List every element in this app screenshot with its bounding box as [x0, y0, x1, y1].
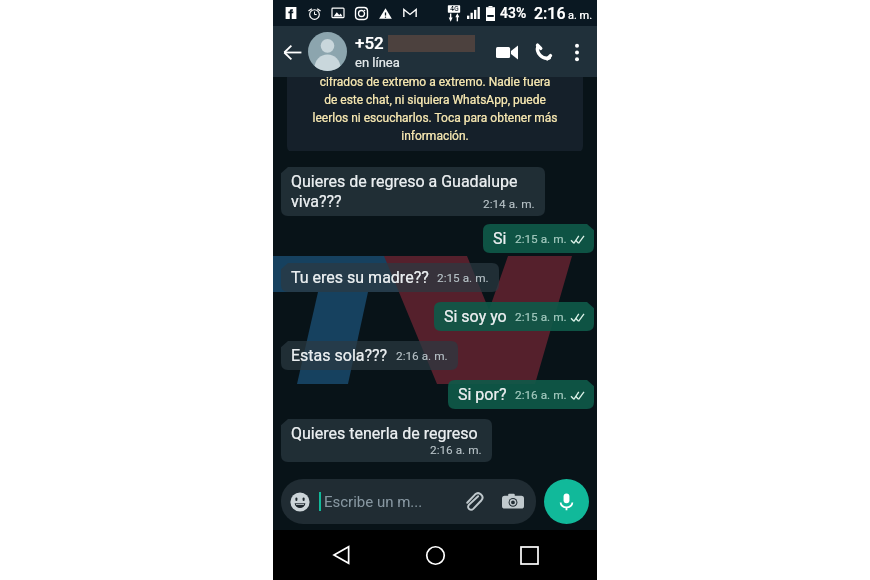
button[interactable]: Home: [415, 535, 455, 575]
staticText: Tu eres su madre??: [291, 268, 429, 287]
button[interactable]: Back: [321, 535, 361, 575]
staticText: 2:15 a. m.: [515, 232, 567, 246]
staticText: Los mensajes y las llamadas están cifrad…: [293, 77, 577, 143]
staticText: Estas sola???: [291, 346, 388, 365]
staticText: 43%: [500, 5, 527, 21]
staticText: 2:16 a. m.: [515, 388, 567, 402]
staticText: Si soy yo: [444, 307, 507, 326]
button[interactable]: Voice message: [544, 479, 589, 524]
button[interactable]: Contact photo: [308, 32, 347, 71]
button[interactable]: More options: [562, 37, 592, 67]
button[interactable]: Si por?: [448, 380, 594, 409]
button[interactable]: Si: [483, 224, 594, 253]
button[interactable]: Quieres de regreso a Guadalupe viva???: [281, 167, 545, 216]
button[interactable]: Back: [277, 37, 307, 67]
staticText: +52: [355, 33, 384, 53]
staticText: Escribe un m...: [324, 493, 423, 511]
staticText: 2:16 a. m.: [396, 349, 448, 363]
staticText: 4G: [450, 5, 459, 13]
staticText: a. m.: [568, 9, 593, 22]
button[interactable]: Tu eres su madre??: [281, 263, 499, 292]
staticText: Si: [493, 229, 507, 248]
staticText: Quieres de regreso a Guadalupe viva???: [291, 172, 518, 211]
staticText: Quieres tenerla de regreso: [291, 424, 478, 443]
button[interactable]: Video call: [490, 35, 524, 69]
button[interactable]: Los mensajes y las llamadas están cifrad…: [287, 77, 583, 151]
staticText: en línea: [355, 55, 400, 70]
staticText: 2:15 a. m.: [515, 310, 567, 324]
button[interactable]: Estas sola???: [281, 341, 458, 370]
staticText: Si por?: [458, 385, 507, 404]
staticText: 2:14 a. m.: [483, 197, 535, 211]
staticText: 2:16 a. m.: [430, 443, 482, 457]
button[interactable]: Attach: [463, 491, 485, 513]
button[interactable]: Quieres tenerla de regreso: [281, 419, 492, 462]
button[interactable]: Escribe un m...: [281, 479, 536, 524]
button[interactable]: Recents: [509, 535, 549, 575]
staticText: 2:15 a. m.: [437, 271, 489, 285]
staticText: 2:16: [534, 4, 566, 23]
button[interactable]: Si soy yo: [434, 302, 594, 331]
button[interactable]: Camera: [502, 491, 524, 513]
button[interactable]: Voice call: [527, 35, 561, 69]
